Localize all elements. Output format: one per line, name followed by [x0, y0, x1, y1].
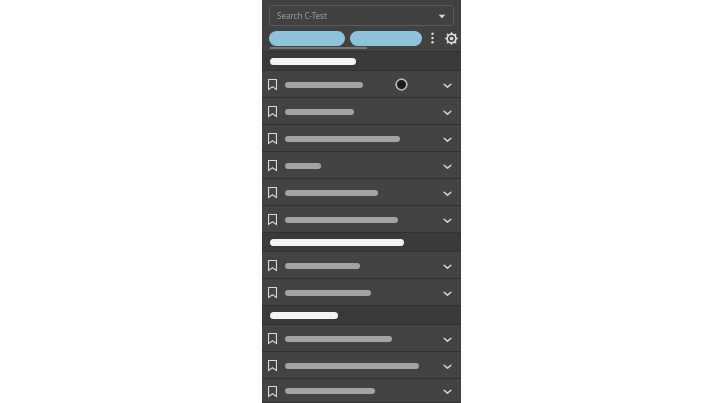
button[interactable]: Section header [262, 306, 461, 325]
button[interactable]: Expand [440, 332, 454, 346]
button[interactable]: List item [262, 98, 461, 125]
button[interactable]: Status indicator [395, 78, 408, 91]
button[interactable]: Filter chip two [350, 31, 422, 46]
button[interactable]: More options [427, 29, 438, 47]
button[interactable]: List item [262, 279, 461, 306]
button[interactable]: Expand [440, 78, 454, 92]
button[interactable]: List item [262, 71, 461, 98]
button[interactable]: Expand [440, 213, 454, 227]
button[interactable]: List item [262, 325, 461, 352]
button[interactable]: Expand [440, 259, 454, 273]
button[interactable]: List item [262, 252, 461, 279]
button[interactable]: List item [262, 152, 461, 179]
button[interactable]: List item [262, 206, 461, 233]
button[interactable]: Expand [440, 286, 454, 300]
button[interactable]: List item [262, 352, 461, 379]
button[interactable]: List item [262, 179, 461, 206]
staticText: Search C-Test [277, 10, 327, 21]
button[interactable]: Expand [440, 384, 454, 398]
button[interactable]: List item [262, 125, 461, 152]
button[interactable]: Section header [262, 233, 461, 252]
button[interactable]: Section header [262, 52, 461, 71]
button[interactable]: Settings [442, 29, 460, 47]
button[interactable]: Expand [440, 105, 454, 119]
button[interactable]: Expand [440, 132, 454, 146]
button[interactable]: Search C-Test [269, 5, 454, 26]
button[interactable]: Expand [440, 186, 454, 200]
button[interactable]: Filter chip one [269, 31, 345, 46]
button[interactable]: List item [262, 379, 461, 403]
button[interactable]: Expand [440, 359, 454, 373]
button[interactable]: Expand [440, 159, 454, 173]
